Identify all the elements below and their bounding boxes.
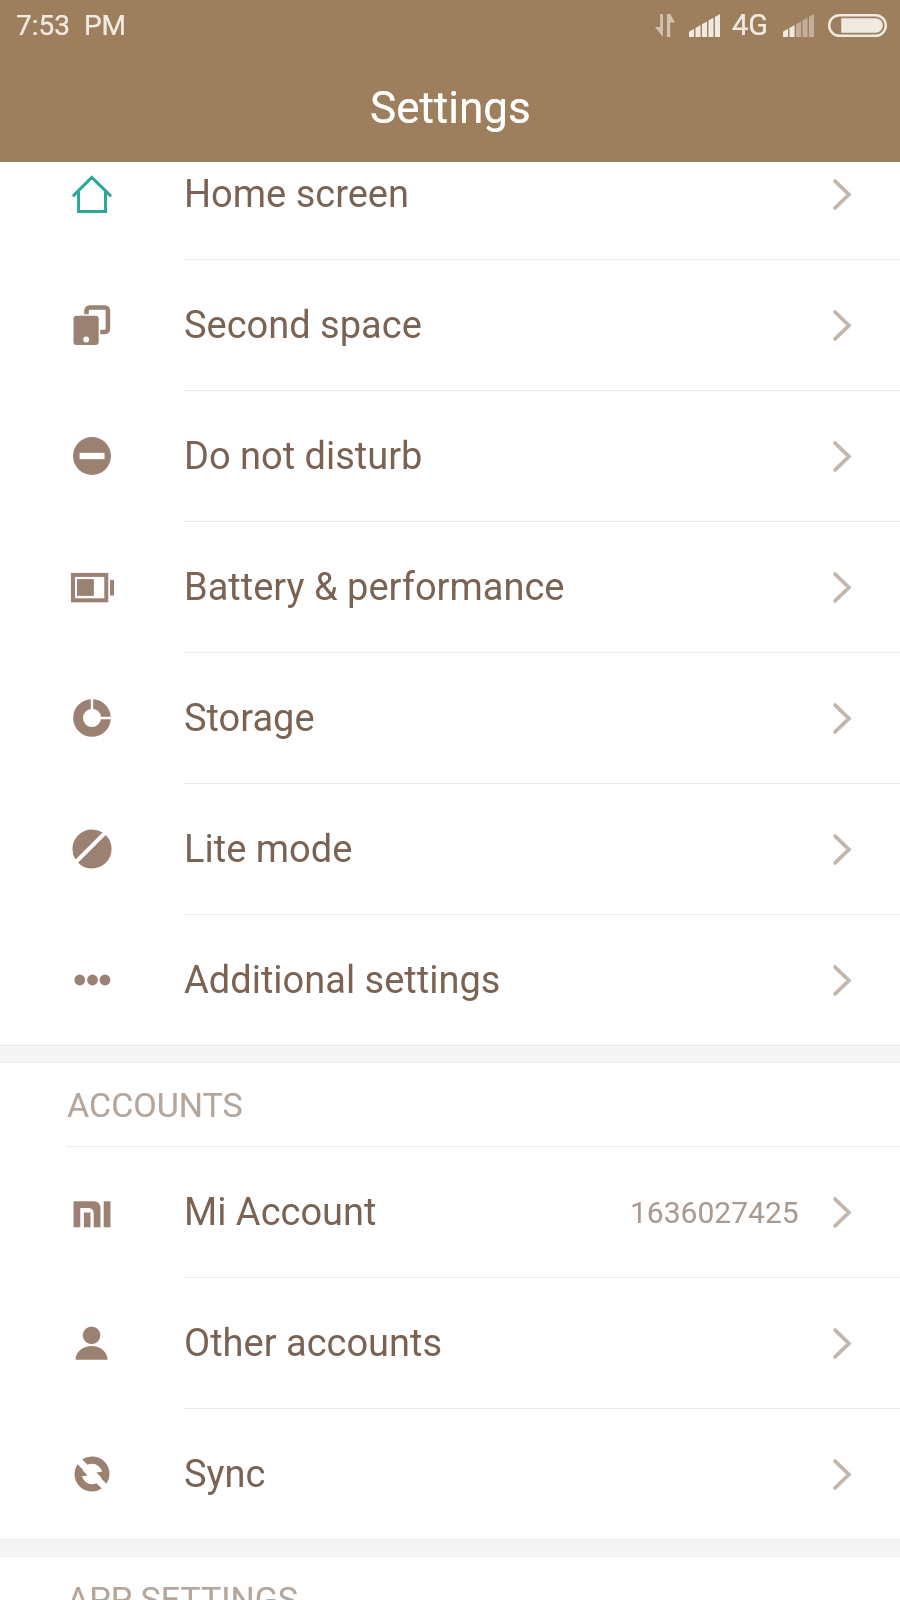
staticText: Storage	[184, 696, 315, 741]
button[interactable]: Lite mode	[0, 784, 900, 915]
staticText: Sync	[184, 1452, 266, 1497]
button[interactable]: Do not disturb	[0, 391, 900, 522]
button[interactable]: Sync	[0, 1409, 900, 1539]
staticText: Second space	[184, 303, 422, 348]
staticText: Additional settings	[184, 958, 501, 1003]
button[interactable]: Second space	[0, 260, 900, 391]
staticText: Do not disturb	[184, 434, 423, 479]
staticText: Home screen	[184, 172, 409, 217]
button[interactable]: Other accounts	[0, 1278, 900, 1409]
staticText: Settings	[370, 82, 531, 134]
staticText: Other accounts	[184, 1321, 443, 1366]
button[interactable]: Home screen	[0, 162, 900, 260]
staticText: Mi Account	[184, 1190, 377, 1235]
staticText: 7:53 PM	[16, 9, 126, 42]
staticText: 4G	[732, 8, 769, 42]
staticText: Lite mode	[184, 827, 353, 872]
button[interactable]: Additional settings	[0, 915, 900, 1045]
staticText: Battery & performance	[184, 565, 565, 610]
staticText: ACCOUNTS	[67, 1085, 243, 1125]
staticText: 1636027425	[630, 1195, 799, 1230]
staticText: APP SETTINGS	[67, 1579, 299, 1600]
button[interactable]: Storage	[0, 653, 900, 784]
button[interactable]: Mi Account	[0, 1147, 900, 1278]
button[interactable]: Battery & performance	[0, 522, 900, 653]
